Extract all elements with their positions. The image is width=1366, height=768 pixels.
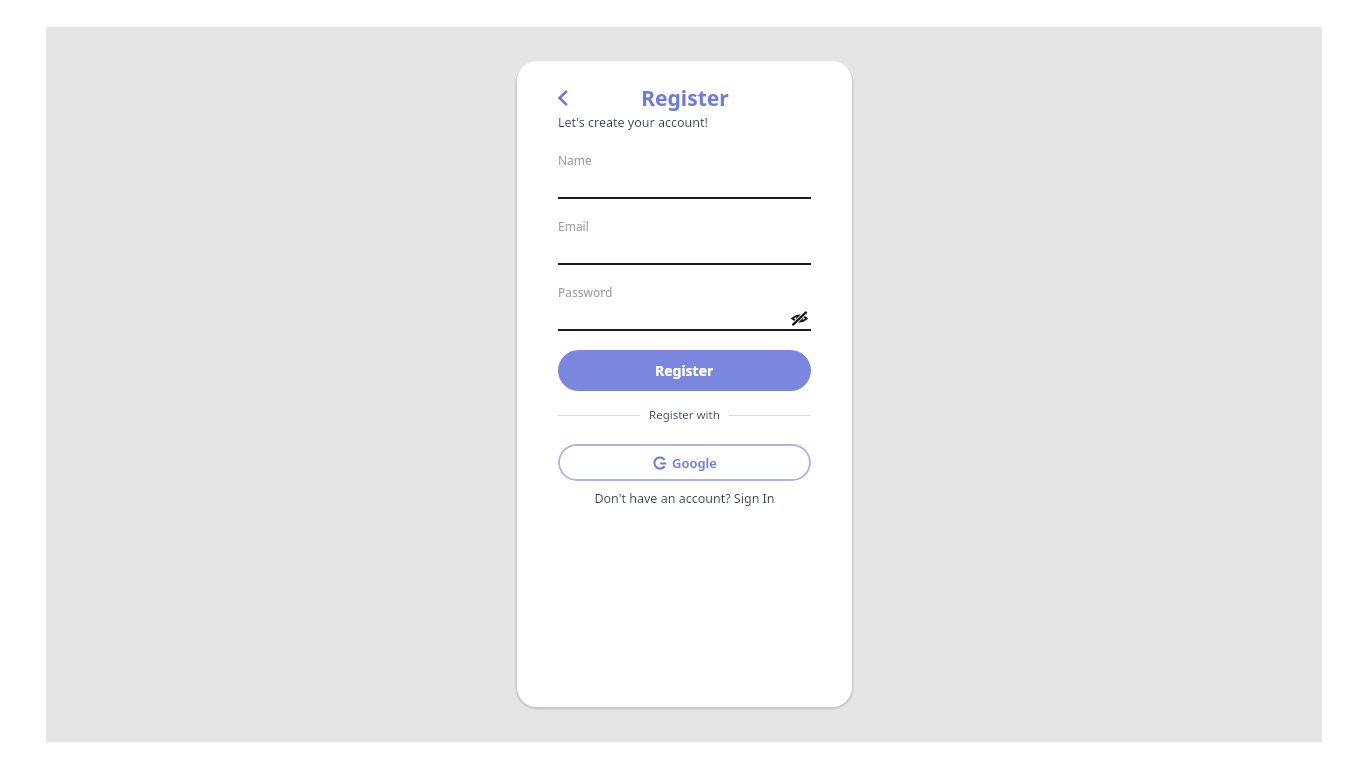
staticText: Google: [672, 454, 717, 472]
button[interactable]: Don't have an account? Sign In: [558, 490, 811, 507]
button[interactable]: Show password: [787, 306, 811, 330]
staticText: Password: [558, 284, 613, 300]
button[interactable]: Register: [558, 350, 811, 391]
button[interactable]: Back: [547, 82, 579, 114]
staticText: Register: [641, 84, 729, 113]
staticText: Don't have an account? Sign In: [594, 490, 775, 507]
button[interactable]: Google: [558, 444, 811, 481]
button[interactable]: Show password: [558, 300, 811, 329]
staticText: Name: [558, 152, 592, 168]
staticText: Email: [558, 218, 589, 234]
staticText: Register: [655, 361, 714, 380]
staticText: Let's create your account!: [558, 114, 708, 131]
staticText: Register with: [649, 407, 720, 423]
